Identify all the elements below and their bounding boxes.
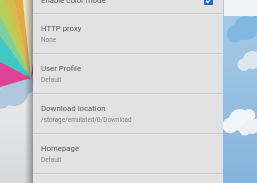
button[interactable]: Enable color mode checkbox	[204, 0, 213, 5]
staticText: Enable color mode	[41, 0, 106, 5]
button[interactable]: Enable color mode	[33, 0, 223, 13]
staticText: Homepage	[41, 144, 80, 153]
staticText: None	[41, 36, 57, 44]
staticText: Download location	[41, 104, 106, 113]
button[interactable]: HTTP proxy	[33, 14, 223, 53]
button[interactable]: Download location	[33, 94, 223, 133]
staticText: HTTP proxy	[41, 24, 82, 33]
staticText: /storage/emulated/0/Download	[41, 116, 132, 124]
staticText: User Profile	[41, 64, 82, 73]
button[interactable]: Homepage	[33, 134, 223, 173]
staticText: Default	[41, 76, 62, 84]
button[interactable]: User Profile	[33, 54, 223, 93]
staticText: Default	[41, 156, 62, 164]
